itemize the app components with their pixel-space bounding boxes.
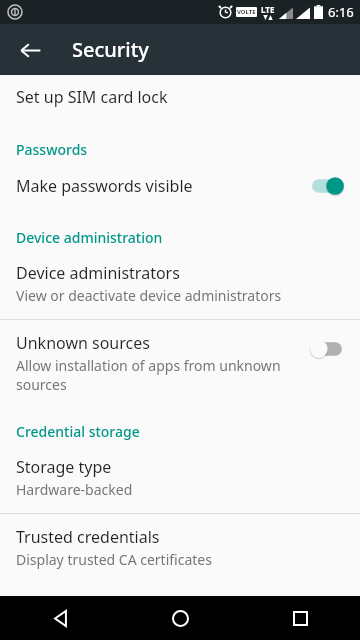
button[interactable]: Trusted credentials (0, 514, 360, 583)
staticText: Display trusted CA certificates (16, 550, 212, 569)
button[interactable]: Back (12, 32, 48, 68)
staticText: LTE (261, 4, 275, 15)
button[interactable]: Set up SIM card lock (0, 75, 360, 118)
staticText: Passwords (16, 140, 360, 159)
button[interactable]: Device administrators (0, 253, 360, 319)
staticText: Trusted credentials (16, 526, 160, 548)
staticText: Credential storage (16, 422, 360, 441)
staticText: Set up SIM card lock (16, 86, 168, 108)
staticText: Device administrators (16, 262, 180, 284)
button[interactable]: Recent apps (240, 596, 360, 640)
button[interactable]: Make passwords visible (0, 165, 360, 210)
button[interactable]: Toggle on (310, 175, 344, 197)
staticText: VOLTE (237, 8, 256, 16)
button[interactable]: Toggle off (310, 338, 344, 360)
staticText: Storage type (16, 456, 112, 478)
staticText: Hardware-backed (16, 480, 133, 499)
button[interactable]: Home (120, 596, 240, 640)
staticText: Allow installation of apps from unknown … (16, 356, 294, 394)
staticText: View or deactivate device administrators (16, 286, 282, 305)
staticText: Device administration (16, 228, 360, 247)
button[interactable]: Back (0, 596, 120, 640)
staticText: Security (72, 36, 149, 63)
staticText: 6:16 (328, 3, 354, 21)
staticText: Make passwords visible (16, 175, 310, 197)
button[interactable]: Unknown sources (0, 320, 360, 404)
button[interactable]: Storage type (0, 447, 360, 513)
staticText: Unknown sources (16, 332, 150, 354)
